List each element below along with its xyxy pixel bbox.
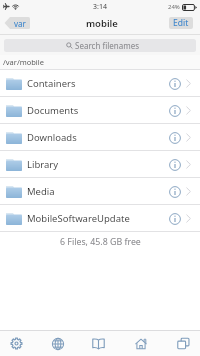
button[interactable]: Containers: [0, 70, 200, 97]
button[interactable]: Library: [0, 151, 200, 178]
staticText: 3:14: [93, 2, 107, 12]
staticText: 24%: [168, 3, 180, 11]
button[interactable]: Settings: [0, 331, 33, 356]
staticText: Documents: [27, 104, 79, 117]
button[interactable]: Bookmarks: [82, 331, 115, 356]
button[interactable]: Home: [124, 331, 157, 356]
staticText: MobileSoftwareUpdate: [27, 212, 130, 225]
button[interactable]: Info about Containers: [169, 78, 181, 90]
staticText: Search filenames: [75, 40, 140, 51]
staticText: mobile: [86, 17, 118, 30]
staticText: 6 Files, 45.8 GB free: [60, 236, 141, 248]
staticText: var: [14, 18, 26, 29]
button[interactable]: Info about Media: [169, 186, 181, 198]
staticText: Media: [27, 185, 55, 198]
button[interactable]: Info about MobileSoftwareUpdate: [169, 213, 181, 225]
button[interactable]: Tabs: [167, 331, 200, 356]
button[interactable]: Edit: [169, 17, 193, 29]
button[interactable]: MobileSoftwareUpdate: [0, 205, 200, 232]
staticText: Library: [27, 158, 59, 171]
staticText: /var/mobile: [3, 57, 44, 67]
button[interactable]: Downloads: [0, 124, 200, 151]
button[interactable]: var: [4, 17, 30, 29]
staticText: Edit: [173, 17, 189, 29]
button[interactable]: Search filenames: [4, 39, 196, 52]
staticText: Downloads: [27, 131, 77, 144]
button[interactable]: Media: [0, 178, 200, 205]
button[interactable]: Documents: [0, 97, 200, 124]
button[interactable]: Browser: [41, 331, 74, 356]
button[interactable]: Info about Documents: [169, 105, 181, 117]
button[interactable]: Info about Downloads: [169, 132, 181, 144]
button[interactable]: Info about Library: [169, 159, 181, 171]
staticText: Containers: [27, 77, 76, 90]
